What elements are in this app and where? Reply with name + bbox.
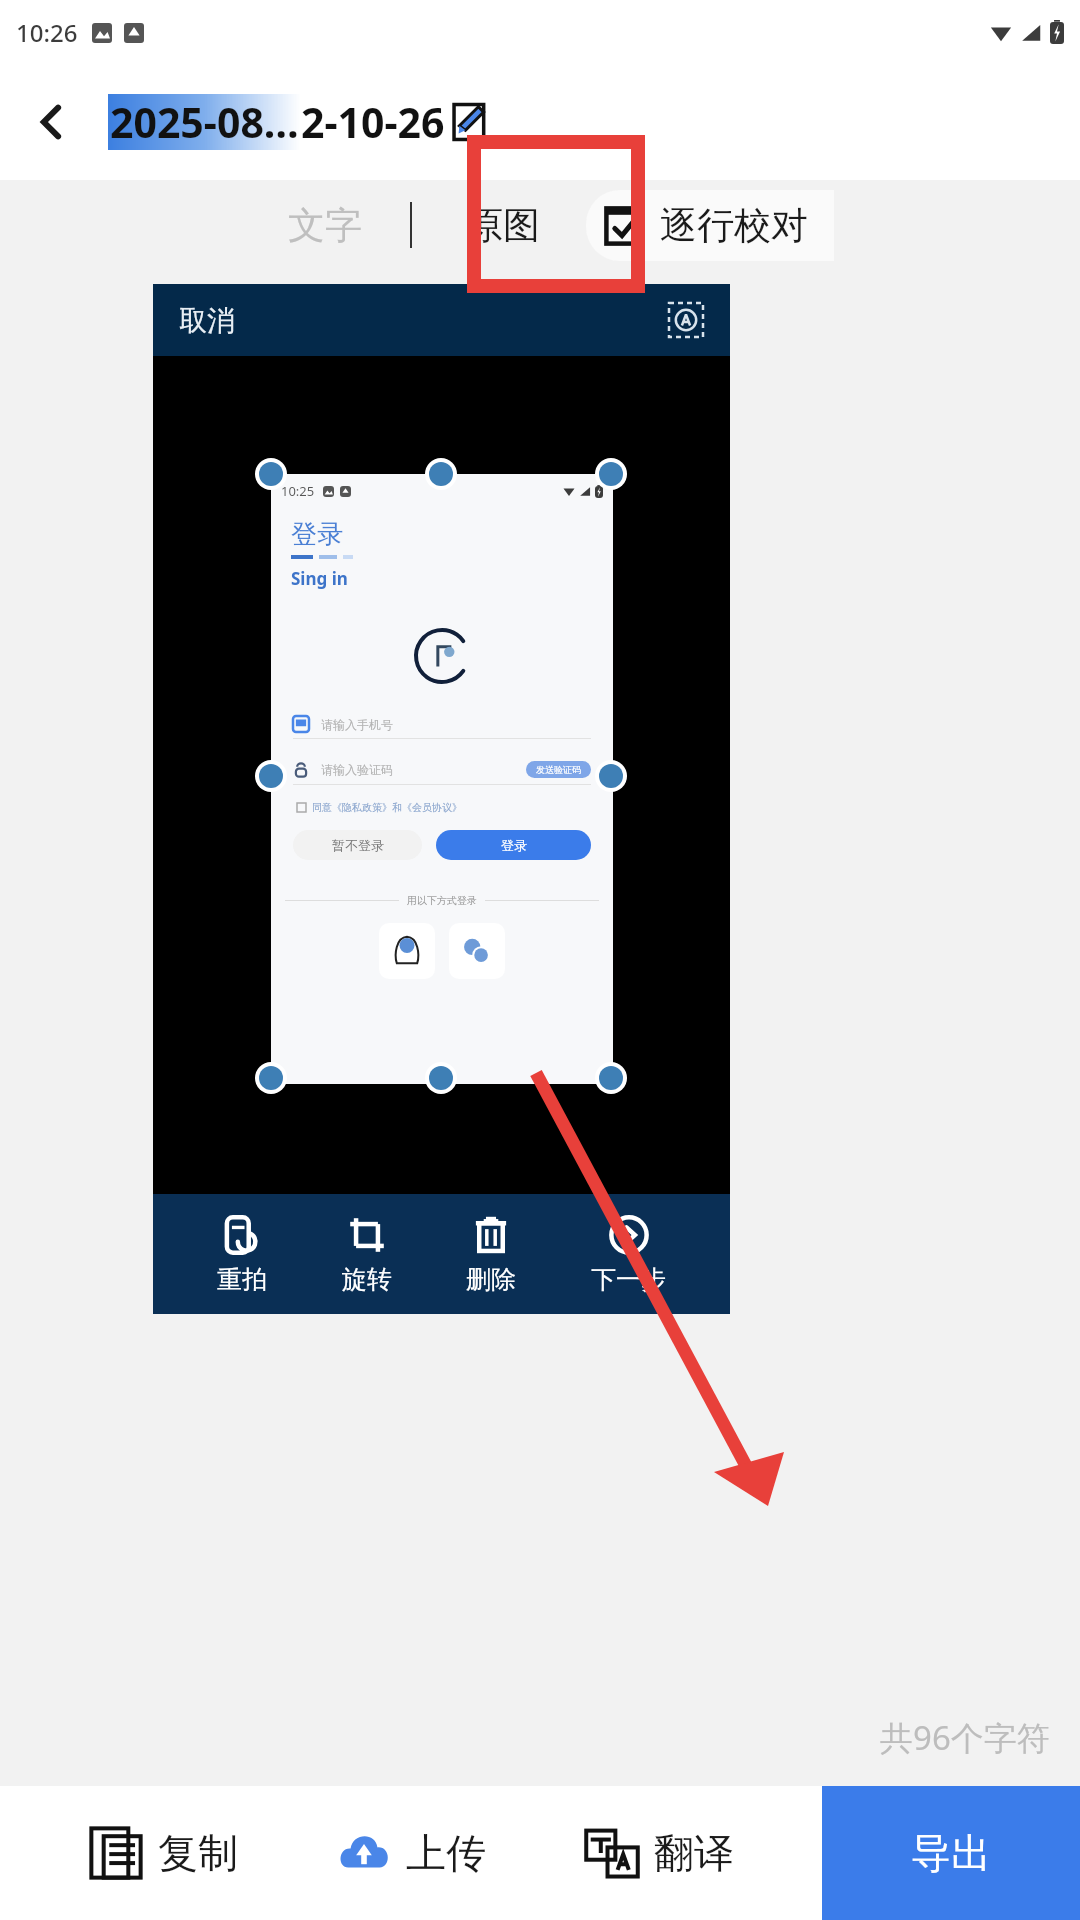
staticText: 2-10-26 xyxy=(301,94,445,150)
button[interactable]: 发送验证码 xyxy=(526,761,591,778)
staticText: 请输入验证码 xyxy=(321,762,393,777)
staticText: Sing in xyxy=(291,567,348,590)
button[interactable]: 文字 xyxy=(278,194,372,257)
button[interactable]: 重拍 xyxy=(207,1210,277,1299)
button[interactable]: Rename xyxy=(447,99,493,145)
staticText: 共96个字符 xyxy=(880,1715,1050,1760)
staticText: 上传 xyxy=(406,1828,486,1878)
button[interactable]: WeChat login xyxy=(449,923,505,979)
button[interactable]: Back xyxy=(18,88,86,156)
staticText: 2025-08… xyxy=(110,94,299,150)
staticText: 同意《隐私政策》和《会员协议》 xyxy=(312,801,462,814)
button[interactable]: QQ login xyxy=(379,923,435,979)
button[interactable]: Auto enhance xyxy=(666,300,706,340)
button[interactable]: 删除 xyxy=(456,1210,526,1299)
staticText: 发送验证码 xyxy=(536,764,581,775)
button[interactable]: 旋转 xyxy=(332,1210,402,1299)
button[interactable]: 上传 xyxy=(326,1815,496,1891)
staticText: 复制 xyxy=(158,1828,238,1878)
staticText: 登录 xyxy=(291,518,343,551)
staticText: 下一步 xyxy=(591,1264,666,1295)
staticText: 删除 xyxy=(466,1264,516,1295)
staticText: 用以下方式登录 xyxy=(407,894,477,907)
staticText: 翻译 xyxy=(654,1828,734,1878)
staticText: 10:26 xyxy=(16,16,78,49)
button[interactable]: 复制 xyxy=(78,1815,248,1891)
staticText: 导出 xyxy=(911,1828,991,1878)
button[interactable]: 下一步 xyxy=(581,1210,676,1299)
button[interactable]: 逐行校对 xyxy=(586,190,834,261)
button[interactable]: 2025-08… xyxy=(108,94,493,150)
staticText: 文字 xyxy=(288,202,362,249)
staticText: 请输入手机号 xyxy=(321,717,393,732)
staticText: 重拍 xyxy=(217,1264,267,1295)
staticText: 暂不登录 xyxy=(332,837,384,853)
button[interactable]: 暂不登录 xyxy=(293,830,422,860)
button[interactable]: 原图 xyxy=(456,194,550,257)
staticText: 原图 xyxy=(466,202,540,249)
staticText: 旋转 xyxy=(342,1264,392,1295)
staticText: 10:25 xyxy=(281,482,315,500)
button[interactable]: 翻译 xyxy=(574,1815,744,1891)
button[interactable]: 取消 xyxy=(179,303,235,338)
button[interactable]: 登录 xyxy=(436,830,591,860)
button[interactable]: 导出 xyxy=(822,1786,1080,1920)
staticText: 逐行校对 xyxy=(660,202,808,249)
staticText: 登录 xyxy=(501,837,527,853)
